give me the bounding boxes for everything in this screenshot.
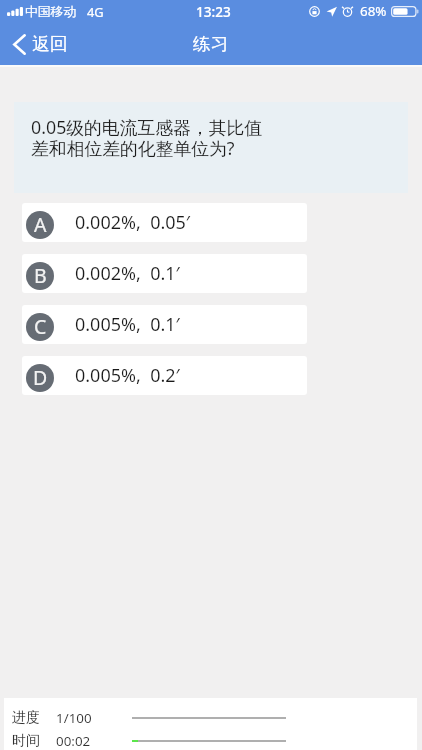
- button[interactable]: B: [22, 254, 307, 293]
- staticText: 时间: [12, 732, 40, 749]
- staticText: 0.05级的电流互感器，其比值差和相位差的化整单位为?: [31, 115, 271, 161]
- staticText: 0.002%, 0.05′: [75, 210, 191, 235]
- staticText: 进度: [12, 709, 40, 726]
- staticText: 4G: [87, 3, 104, 20]
- staticText: 中国移动: [25, 4, 77, 20]
- button[interactable]: A: [22, 203, 307, 242]
- staticText: 0.005%, 0.2′: [75, 363, 180, 388]
- staticText: C: [34, 313, 47, 340]
- staticText: 返回: [32, 33, 68, 55]
- staticText: 0.002%, 0.1′: [75, 261, 180, 286]
- button[interactable]: D: [22, 356, 307, 395]
- staticText: 00:02: [56, 732, 91, 749]
- staticText: 13:23: [196, 2, 231, 21]
- staticText: A: [34, 211, 47, 238]
- staticText: 1/100: [56, 709, 92, 726]
- button[interactable]: 返回: [0, 28, 84, 60]
- staticText: 68%: [360, 2, 387, 20]
- staticText: D: [33, 364, 48, 391]
- staticText: 0.005%, 0.1′: [75, 312, 180, 337]
- button[interactable]: C: [22, 305, 307, 344]
- staticText: B: [34, 262, 47, 289]
- staticText: 练习: [193, 33, 229, 55]
